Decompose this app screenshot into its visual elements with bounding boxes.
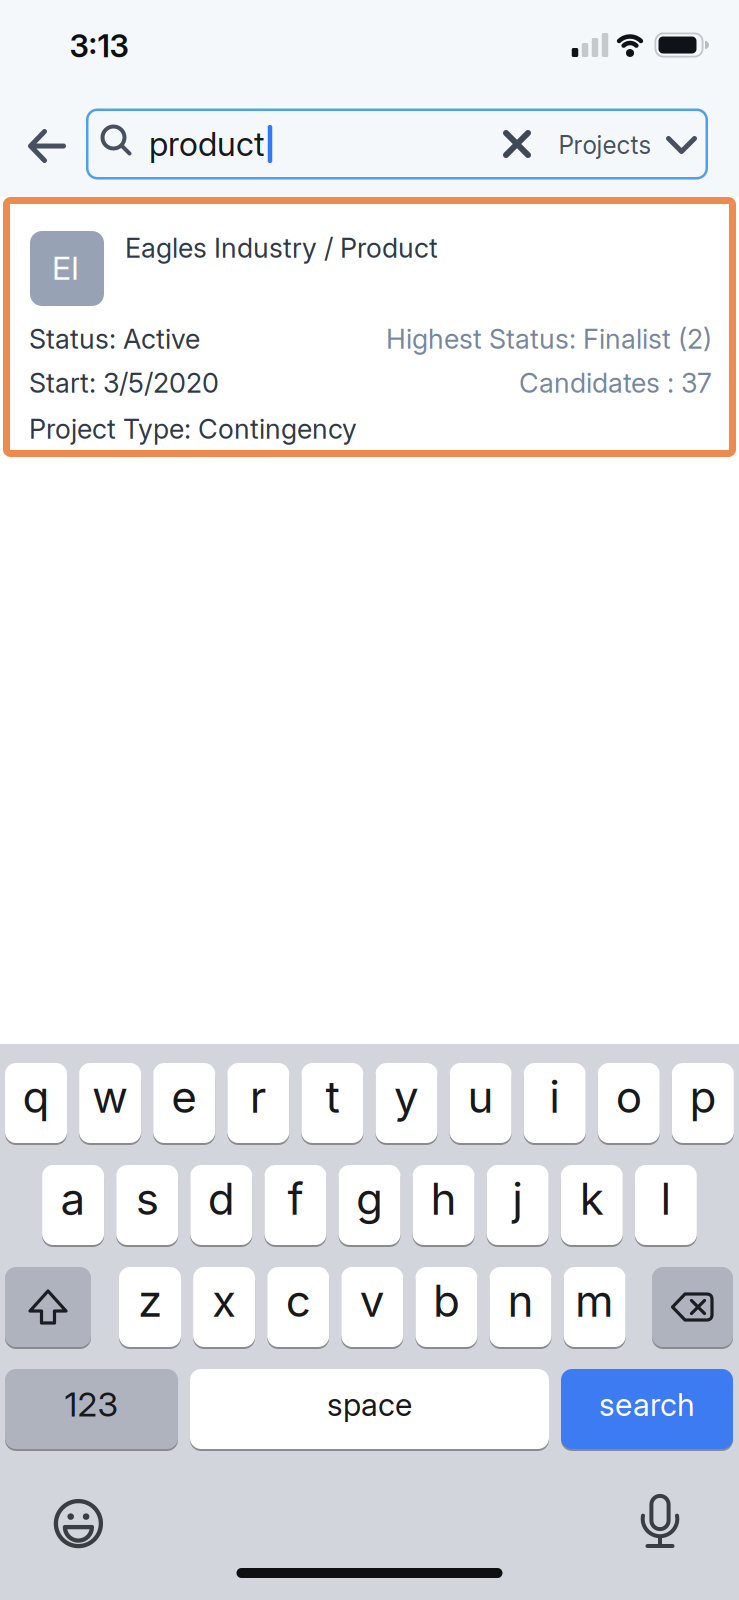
staticText: Projects bbox=[558, 130, 651, 160]
button[interactable]: e bbox=[153, 1062, 215, 1144]
staticText: h bbox=[431, 1172, 457, 1225]
button[interactable]: i bbox=[524, 1062, 586, 1144]
staticText: x bbox=[212, 1274, 236, 1327]
staticText: Start: 3/5/2020 bbox=[29, 367, 219, 399]
staticText: p bbox=[689, 1070, 716, 1123]
staticText: g bbox=[356, 1172, 383, 1225]
staticText: y bbox=[394, 1070, 419, 1123]
staticText: c bbox=[286, 1274, 311, 1327]
button[interactable]: Delete bbox=[652, 1266, 733, 1348]
button[interactable]: Search scope: Projects bbox=[558, 117, 695, 173]
button[interactable]: v bbox=[341, 1266, 403, 1348]
button[interactable]: m bbox=[564, 1266, 626, 1348]
staticText: Eagles Industry / Product bbox=[125, 232, 438, 264]
button[interactable]: EI bbox=[3, 197, 736, 457]
staticText: r bbox=[250, 1070, 267, 1123]
staticText: EI bbox=[52, 249, 79, 287]
staticText: Highest Status: Finalist (2) bbox=[386, 323, 712, 355]
staticText: space bbox=[327, 1386, 412, 1423]
staticText: product bbox=[149, 124, 264, 164]
staticText: f bbox=[287, 1172, 303, 1225]
button[interactable]: h bbox=[413, 1164, 475, 1246]
button[interactable]: y bbox=[375, 1062, 437, 1144]
staticText: e bbox=[171, 1070, 197, 1123]
button[interactable]: l bbox=[635, 1164, 697, 1246]
staticText: j bbox=[512, 1172, 523, 1225]
button[interactable]: 123 bbox=[5, 1368, 178, 1450]
button[interactable]: o bbox=[598, 1062, 660, 1144]
staticText: d bbox=[208, 1172, 235, 1225]
button[interactable]: c bbox=[267, 1266, 329, 1348]
button[interactable]: Back bbox=[19, 118, 75, 174]
button[interactable]: s bbox=[116, 1164, 178, 1246]
button[interactable]: n bbox=[489, 1266, 551, 1348]
button[interactable]: b bbox=[415, 1266, 477, 1348]
staticText: u bbox=[468, 1070, 494, 1123]
button[interactable]: r bbox=[227, 1062, 289, 1144]
button[interactable]: a bbox=[42, 1164, 104, 1246]
staticText: 3:13 bbox=[69, 27, 128, 65]
button[interactable]: Clear search bbox=[495, 122, 539, 166]
staticText: s bbox=[136, 1172, 159, 1225]
button[interactable]: Dictation bbox=[632, 1491, 688, 1551]
button[interactable]: u bbox=[450, 1062, 512, 1144]
button[interactable]: q bbox=[5, 1062, 67, 1144]
button[interactable]: t bbox=[301, 1062, 363, 1144]
staticText: o bbox=[616, 1070, 642, 1123]
staticText: m bbox=[575, 1274, 614, 1327]
staticText: l bbox=[660, 1172, 671, 1225]
staticText: search bbox=[599, 1386, 695, 1423]
staticText: i bbox=[549, 1070, 560, 1123]
button[interactable]: x bbox=[193, 1266, 255, 1348]
staticText: t bbox=[325, 1070, 339, 1123]
staticText: q bbox=[22, 1070, 49, 1123]
staticText: k bbox=[580, 1172, 604, 1225]
button[interactable]: g bbox=[338, 1164, 400, 1246]
staticText: v bbox=[360, 1274, 385, 1327]
staticText: Project Type: Contingency bbox=[29, 413, 357, 445]
button[interactable]: z bbox=[119, 1266, 181, 1348]
button[interactable]: f bbox=[264, 1164, 326, 1246]
staticText: w bbox=[92, 1070, 128, 1123]
button[interactable]: w bbox=[79, 1062, 141, 1144]
button[interactable]: k bbox=[561, 1164, 623, 1246]
button[interactable]: Shift bbox=[5, 1266, 91, 1348]
staticText: z bbox=[138, 1274, 162, 1327]
button[interactable]: space bbox=[190, 1368, 549, 1450]
button[interactable]: j bbox=[487, 1164, 549, 1246]
staticText: b bbox=[433, 1274, 460, 1327]
staticText: 123 bbox=[64, 1384, 118, 1425]
staticText: Status: Active bbox=[29, 323, 200, 355]
button[interactable]: Emoji bbox=[48, 1494, 108, 1554]
button[interactable]: p bbox=[672, 1062, 734, 1144]
staticText: n bbox=[507, 1274, 533, 1327]
button[interactable]: search bbox=[561, 1368, 733, 1450]
staticText: a bbox=[61, 1172, 86, 1225]
staticText: Candidates : 37 bbox=[519, 367, 712, 399]
button[interactable]: d bbox=[190, 1164, 252, 1246]
